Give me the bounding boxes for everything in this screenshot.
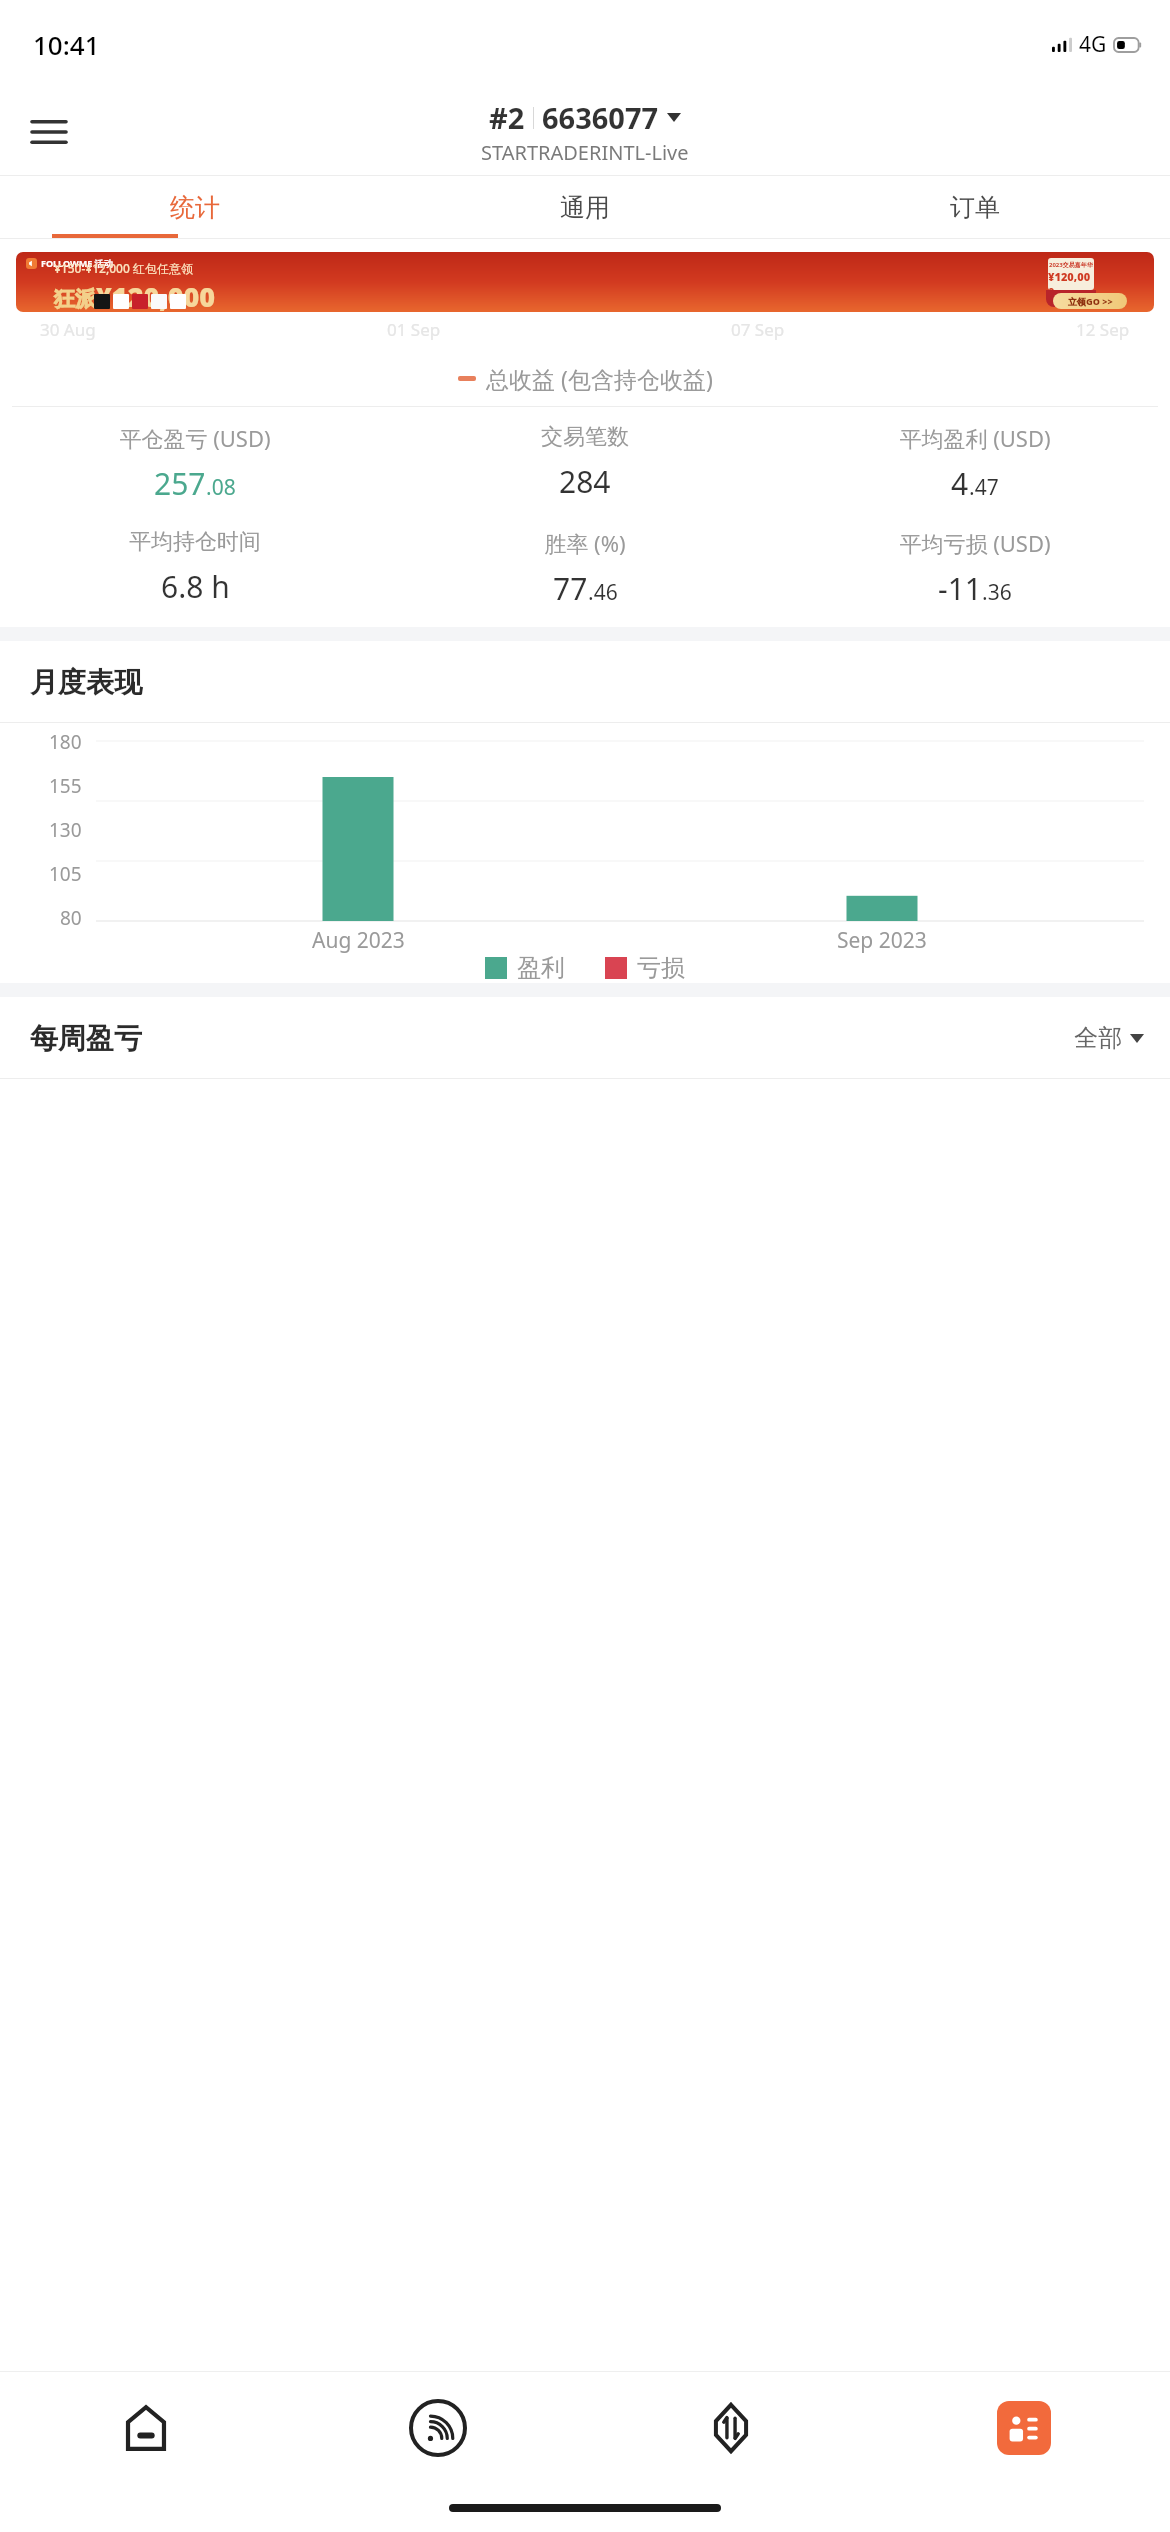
button[interactable]: Signals bbox=[292, 2372, 584, 2484]
staticText: FOLLOWME 活动 bbox=[41, 257, 113, 269]
staticText: ¥120,000 bbox=[96, 278, 216, 312]
button[interactable]: 订单 bbox=[780, 176, 1170, 238]
staticText: 通用 bbox=[560, 192, 610, 223]
staticText: STARTRADERINTL-Live bbox=[481, 139, 689, 166]
staticText: 狂派 bbox=[54, 286, 96, 312]
button[interactable]: Menu bbox=[20, 103, 78, 161]
staticText: 2023交易嘉年华 bbox=[1049, 261, 1093, 269]
button[interactable]: 交易笔数 bbox=[390, 423, 780, 502]
staticText: 统计 bbox=[170, 192, 220, 223]
staticText: ¥150-¥12,000 红包任意领 bbox=[54, 260, 193, 276]
staticText: 平均亏损 (USD) bbox=[899, 528, 1051, 558]
staticText: 总收益 (包含持仓收益) bbox=[486, 363, 713, 394]
staticText: 立领GO >> bbox=[1068, 295, 1113, 307]
button[interactable]: 通用 bbox=[390, 176, 780, 238]
staticText: .46 bbox=[588, 578, 618, 607]
staticText: 77 bbox=[553, 568, 588, 609]
button[interactable]: 全部 bbox=[1074, 1023, 1144, 1053]
button[interactable]: 亏损 bbox=[605, 953, 685, 983]
staticText: 180 bbox=[49, 729, 82, 755]
button[interactable]: 平均亏损 (USD) bbox=[780, 528, 1170, 609]
staticText: -11 bbox=[938, 568, 982, 609]
staticText: Sep 2023 bbox=[837, 926, 927, 955]
button[interactable]: 平均持仓时间 bbox=[0, 528, 390, 607]
button[interactable]: FOLLOWME 活动 bbox=[16, 252, 1154, 312]
button[interactable]: Trade bbox=[584, 2372, 877, 2484]
staticText: 订单 bbox=[950, 192, 1000, 223]
staticText: #2 bbox=[489, 98, 525, 137]
button[interactable]: Home bbox=[0, 2372, 292, 2484]
staticText: 6636077 bbox=[542, 98, 659, 137]
staticText: 月度表现 bbox=[30, 665, 142, 700]
button[interactable]: 立领GO >> bbox=[1053, 293, 1127, 309]
button[interactable]: 平仓盈亏 (USD) bbox=[0, 423, 390, 504]
staticText: .47 bbox=[969, 473, 999, 502]
staticText: 平均持仓时间 bbox=[129, 528, 261, 556]
staticText: 4G bbox=[1079, 30, 1107, 59]
staticText: 4 bbox=[951, 463, 969, 504]
staticText: 每周盈亏 bbox=[30, 1021, 142, 1056]
staticText: 胜率 (%) bbox=[544, 528, 626, 558]
button[interactable]: 平均盈利 (USD) bbox=[780, 423, 1170, 504]
staticText: 30 Aug bbox=[40, 318, 96, 341]
staticText: 284 bbox=[559, 461, 611, 502]
staticText: 12 Sep bbox=[1076, 318, 1130, 341]
button[interactable]: 胜率 (%) bbox=[390, 528, 780, 609]
staticText: 01 Sep bbox=[387, 318, 441, 341]
staticText: .36 bbox=[982, 578, 1012, 607]
staticText: 交易笔数 bbox=[541, 423, 629, 451]
staticText: 平均盈利 (USD) bbox=[899, 423, 1051, 453]
staticText: 亏损 bbox=[637, 953, 685, 983]
staticText: .08 bbox=[206, 473, 236, 502]
staticText: 257 bbox=[154, 463, 206, 504]
staticText: 6.8 h bbox=[161, 566, 230, 607]
button[interactable]: 盈利 bbox=[485, 953, 565, 983]
staticText: 155 bbox=[49, 773, 82, 799]
staticText: 平仓盈亏 (USD) bbox=[119, 423, 271, 453]
button[interactable]: Profile bbox=[877, 2372, 1170, 2484]
staticText: 105 bbox=[49, 861, 82, 887]
staticText: 80 bbox=[60, 905, 82, 931]
button[interactable]: 统计 bbox=[0, 176, 390, 238]
staticText: 10:41 bbox=[33, 27, 100, 62]
staticText: 全部 bbox=[1074, 1023, 1122, 1053]
staticText: 盈利 bbox=[517, 953, 565, 983]
staticText: 130 bbox=[49, 817, 82, 843]
staticText: Aug 2023 bbox=[312, 926, 405, 955]
staticText: ¥120,000 bbox=[1048, 269, 1094, 290]
staticText: 07 Sep bbox=[731, 318, 785, 341]
